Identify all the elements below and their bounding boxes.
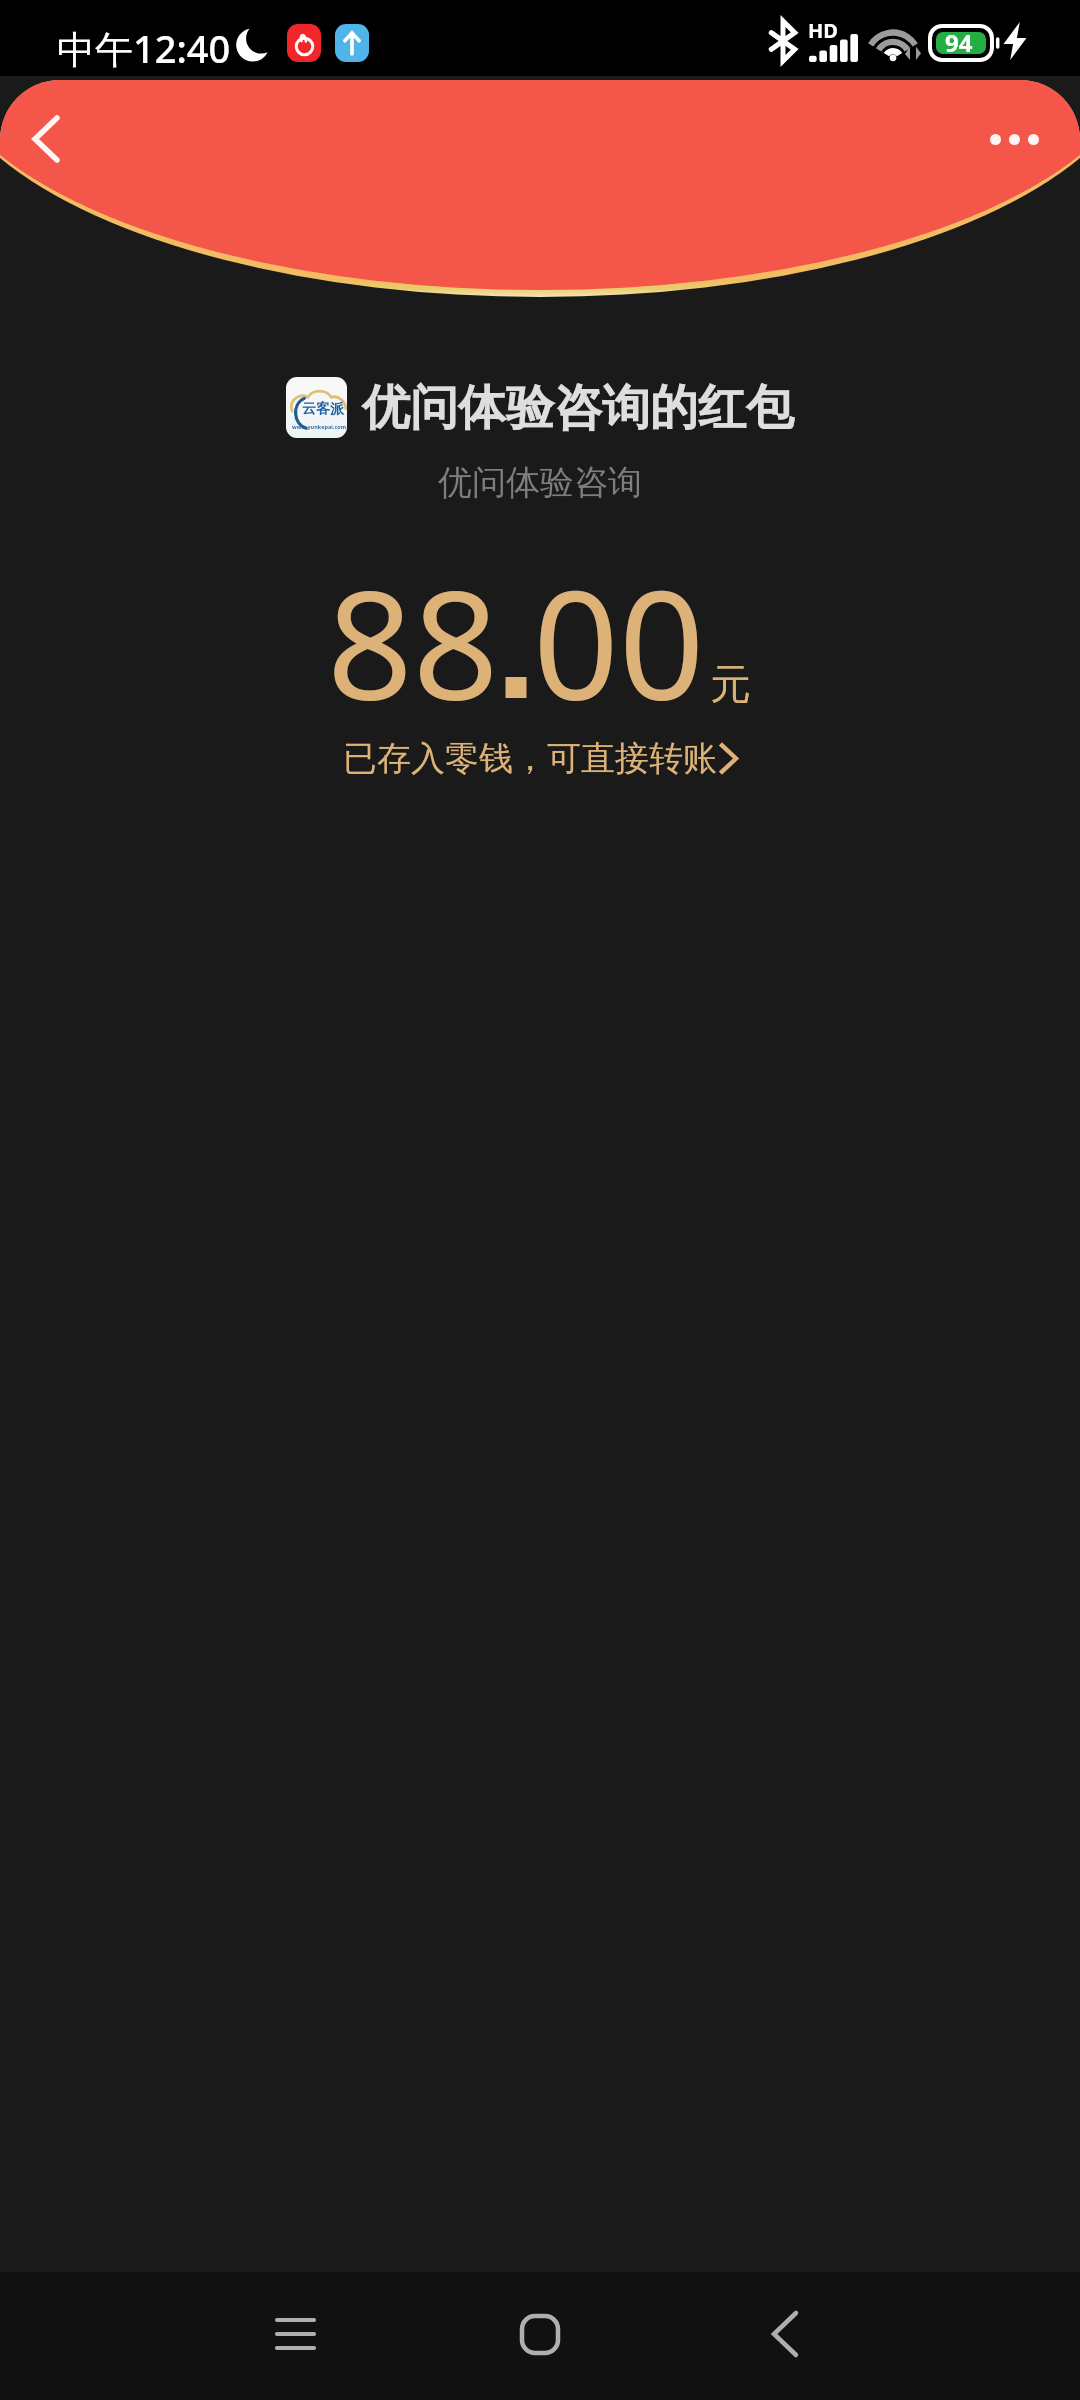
staticText: HD [808, 17, 838, 44]
staticText: 优问体验咨询 [438, 461, 642, 504]
button[interactable]: More options [976, 107, 1052, 171]
staticText: 94 [945, 26, 973, 59]
button[interactable]: Back [725, 2274, 845, 2394]
staticText: 00 [533, 540, 705, 744]
button[interactable]: Back [14, 107, 78, 171]
staticText: 中午12:40 [57, 22, 231, 74]
staticText: 云客派 [302, 400, 344, 418]
staticText: 已存入零钱，可直接转账 [343, 737, 717, 780]
staticText: 元 [710, 659, 751, 711]
button[interactable]: 云客派 [286, 377, 794, 438]
staticText: 88 [327, 540, 499, 744]
staticText: www.yunkepai.com [292, 423, 347, 430]
button[interactable]: 已存入零钱，可直接转账 [335, 733, 746, 784]
button[interactable]: Home [480, 2274, 600, 2394]
staticText: 优问体验咨询的红包 [362, 378, 794, 438]
button[interactable]: Recent apps [235, 2274, 355, 2394]
